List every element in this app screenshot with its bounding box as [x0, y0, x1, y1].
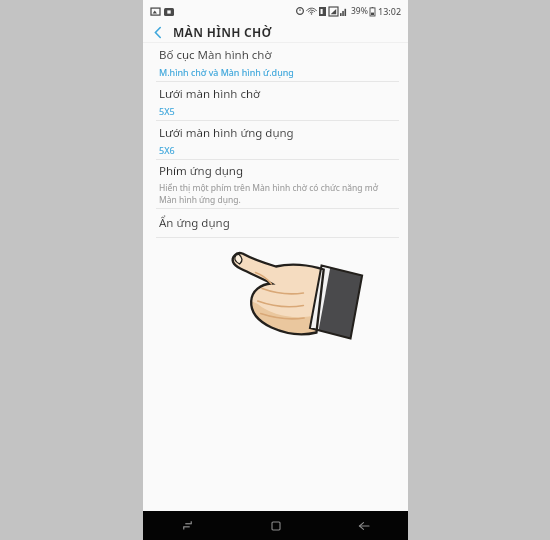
- staticText: 5X5: [159, 105, 175, 117]
- button[interactable]: Ẩn ứng dụng: [143, 209, 408, 237]
- staticText: Lưới màn hình ứng dụng: [159, 125, 294, 141]
- button[interactable]: Back: [143, 22, 173, 42]
- button[interactable]: Lưới màn hình ứng dụng: [143, 121, 408, 159]
- button[interactable]: Home: [232, 511, 320, 540]
- button[interactable]: Back: [320, 511, 408, 540]
- button[interactable]: Recent apps: [143, 511, 232, 540]
- staticText: 39%: [351, 5, 368, 17]
- staticText: 13:02: [378, 5, 402, 17]
- staticText: 5X6: [159, 144, 175, 156]
- staticText: Lưới màn hình chờ: [159, 86, 261, 102]
- button[interactable]: Lưới màn hình chờ: [143, 82, 408, 120]
- staticText: Bố cục Màn hình chờ: [159, 47, 272, 63]
- button[interactable]: Phím ứng dụng: [143, 160, 408, 208]
- staticText: M.hình chờ và Màn hình ứ.dụng: [159, 66, 294, 78]
- button[interactable]: Bố cục Màn hình chờ: [143, 43, 408, 81]
- staticText: Ẩn ứng dụng: [159, 215, 230, 231]
- staticText: Phím ứng dụng: [159, 163, 244, 179]
- staticText: Màn hình ứng dụng.: [159, 194, 241, 206]
- staticText: Hiển thị một phím trên Màn hình chờ có c…: [159, 182, 378, 194]
- staticText: MÀN HÌNH CHỜ: [173, 24, 272, 40]
